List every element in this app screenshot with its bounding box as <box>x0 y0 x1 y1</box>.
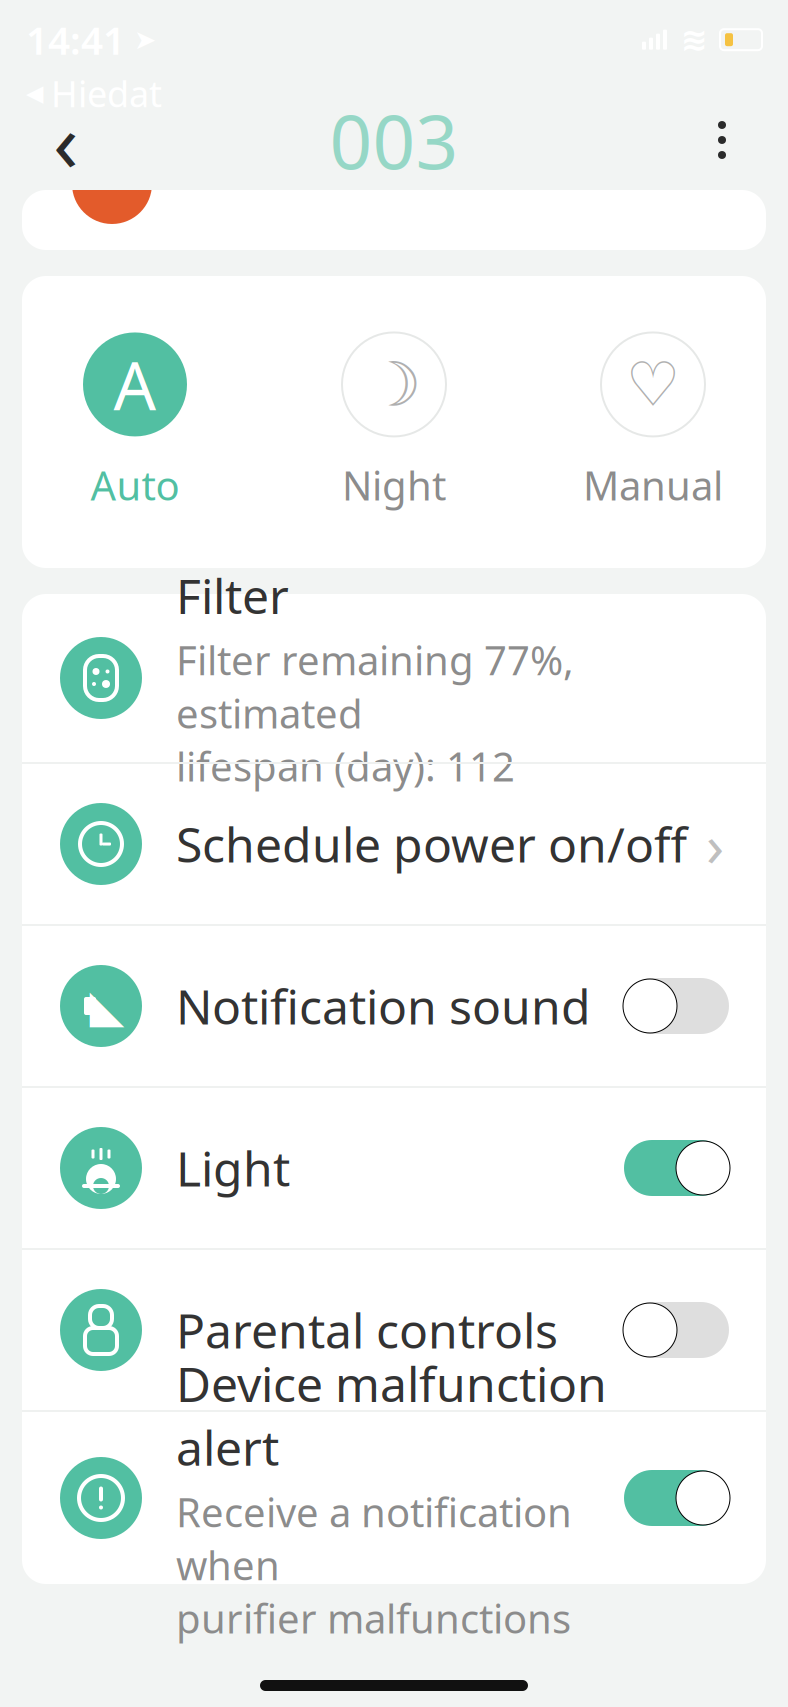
button[interactable]: More options <box>682 100 762 180</box>
staticText: Schedule power on/off <box>176 812 687 876</box>
staticText: Parental controls <box>176 1298 558 1362</box>
staticText: ‹ <box>53 85 79 195</box>
button[interactable]: Light <box>22 1088 766 1248</box>
staticText: 14:41 <box>26 14 125 65</box>
staticText: ➤ <box>125 24 156 55</box>
button[interactable]: Schedule power on/off <box>22 764 766 924</box>
staticText: 003 <box>329 90 458 190</box>
staticText: ◀ <box>26 80 43 106</box>
staticText: ◣ <box>89 980 124 1032</box>
staticText: Auto <box>90 458 179 511</box>
button[interactable]: ◣ <box>22 926 766 1086</box>
staticText: Hiedat <box>51 69 162 117</box>
staticText: A <box>113 340 156 429</box>
staticText: › <box>706 805 724 883</box>
staticText: Manual <box>583 458 723 511</box>
button[interactable]: Back <box>26 100 106 180</box>
staticText: Night <box>342 458 446 511</box>
button[interactable]: Device malfunction alert <box>22 1412 766 1584</box>
staticText: ≋ <box>681 21 708 58</box>
staticText: Receive a notification when purifier mal… <box>176 1485 572 1644</box>
staticText: ♡ <box>625 350 680 419</box>
staticText: Device malfunction alert <box>176 1352 607 1479</box>
staticText: Filter remaining 77%, estimated lifespan… <box>176 633 594 793</box>
button[interactable]: ☽ <box>309 332 479 511</box>
button[interactable]: Filter <box>22 594 766 762</box>
staticText: ☽ <box>366 350 421 419</box>
button[interactable]: ♡ <box>568 332 738 511</box>
button[interactable]: A <box>50 332 220 511</box>
button[interactable]: Parental controls <box>22 1250 766 1410</box>
staticText: Light <box>176 1136 290 1200</box>
staticText: Filter <box>176 563 289 627</box>
staticText: Notification sound <box>176 974 591 1038</box>
